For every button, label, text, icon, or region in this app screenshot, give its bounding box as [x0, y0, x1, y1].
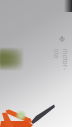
staticText: M [59, 35, 64, 43]
staticText: motorola [50, 50, 71, 68]
